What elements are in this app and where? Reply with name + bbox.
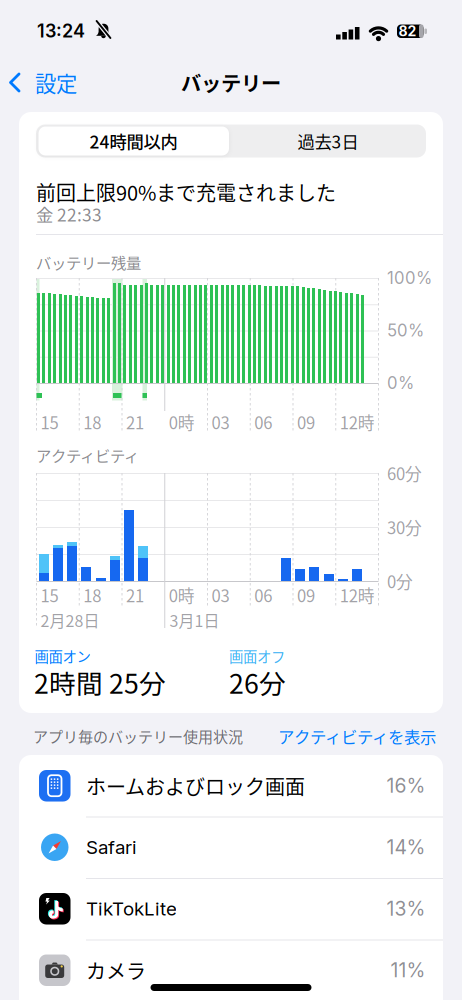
button[interactable]: ホームおよびロック画面 [19,755,443,816]
staticText: 30分 [387,515,422,539]
staticText: 60分 [387,461,422,485]
staticText: アクティビティを表示 [278,724,436,748]
staticText: TikTokLite [86,897,177,920]
staticText: カメラ [86,956,146,985]
button[interactable]: アクティビティを表示 [264,721,438,751]
staticText: 0分 [387,569,413,593]
staticText: 14% [386,836,425,859]
staticText: 13:24 [37,20,85,42]
staticText: 06 [254,583,272,607]
staticText: 前回上限90%まで充電されました [36,177,336,206]
staticText: 3月1日 [169,608,219,632]
staticText: 12時 [340,410,375,434]
staticText: アプリ毎のバッテリー使用状況 [33,725,243,747]
button[interactable]: TikTokLite [19,878,443,939]
button[interactable]: 設定 [2,64,86,101]
staticText: 06 [254,410,272,434]
staticText: 50% [387,320,424,341]
staticText: バッテリー [181,68,281,97]
button[interactable]: Safari [19,816,443,878]
staticText: 26分 [229,663,286,701]
staticText: 12時 [340,583,375,607]
staticText: 11% [390,959,425,982]
staticText: 82 [398,23,416,40]
staticText: 15 [40,410,58,434]
staticText: バッテリー残量 [36,251,141,273]
staticText: ホームおよびロック画面 [86,771,305,800]
staticText: 21 [126,583,144,607]
staticText: 16% [386,774,425,797]
staticText: アクティビティ [36,444,139,466]
staticText: Safari [86,836,137,859]
staticText: 画面オフ [229,646,285,666]
staticText: 0時 [169,410,195,434]
button[interactable]: 過去3日 [231,124,425,157]
staticText: 0時 [169,583,195,607]
staticText: 2月28日 [40,608,99,632]
staticText: 画面オン [34,646,90,666]
button[interactable]: 24時間以内 [36,124,231,157]
staticText: 設定 [35,67,77,98]
staticText: 過去3日 [297,128,358,154]
staticText: 09 [297,583,315,607]
staticText: 0% [387,373,414,393]
staticText: 18 [83,410,101,434]
staticText: 2時間 25分 [34,663,166,701]
staticText: 100% [387,268,432,288]
staticText: 21 [126,410,144,434]
staticText: 18 [83,583,101,607]
staticText: 13% [386,897,425,920]
staticText: 09 [297,410,315,434]
staticText: 24時間以内 [89,128,177,154]
button[interactable]: カメラ [19,939,443,1000]
staticText: 15 [40,583,58,607]
staticText: 03 [211,410,229,434]
staticText: 金 22:33 [36,201,102,227]
staticText: 03 [211,583,229,607]
